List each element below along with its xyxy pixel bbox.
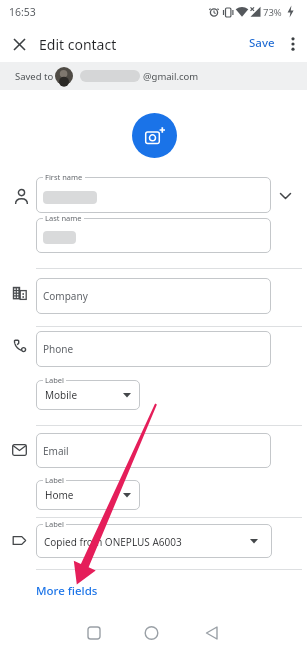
staticText: Label — [45, 519, 64, 529]
button[interactable] — [274, 185, 296, 207]
staticText: Save — [249, 35, 275, 51]
staticText: Email — [43, 444, 69, 458]
staticText: Label — [45, 375, 64, 385]
staticText: First name — [45, 172, 83, 182]
button[interactable] — [36, 278, 271, 314]
button[interactable] — [132, 617, 172, 650]
staticText: 73% — [263, 6, 282, 19]
staticText: Phone — [43, 342, 74, 356]
button[interactable] — [36, 524, 272, 558]
staticText: Saved to — [15, 70, 54, 83]
staticText: Company — [43, 289, 88, 303]
button[interactable] — [8, 33, 30, 55]
staticText: More fields — [36, 583, 98, 599]
staticText: Edit contact — [39, 35, 117, 54]
button[interactable] — [36, 177, 271, 213]
button[interactable] — [36, 331, 271, 367]
button[interactable] — [132, 113, 177, 158]
button[interactable] — [36, 480, 140, 510]
staticText: Last name — [45, 213, 82, 223]
button[interactable] — [192, 617, 232, 650]
staticText: Home — [45, 488, 74, 502]
button[interactable] — [36, 433, 271, 468]
staticText: 16:53 — [9, 5, 36, 19]
staticText: Mobile — [45, 388, 78, 402]
button[interactable] — [36, 380, 140, 410]
button[interactable] — [283, 33, 303, 55]
button[interactable]: More fields — [30, 580, 110, 602]
button[interactable] — [74, 617, 114, 650]
button[interactable] — [36, 218, 271, 253]
staticText: Copied from ONEPLUS A6003 — [44, 535, 182, 549]
button[interactable]: Save — [244, 30, 280, 56]
staticText: @gmail.com — [143, 70, 199, 83]
staticText: Label — [45, 475, 64, 485]
